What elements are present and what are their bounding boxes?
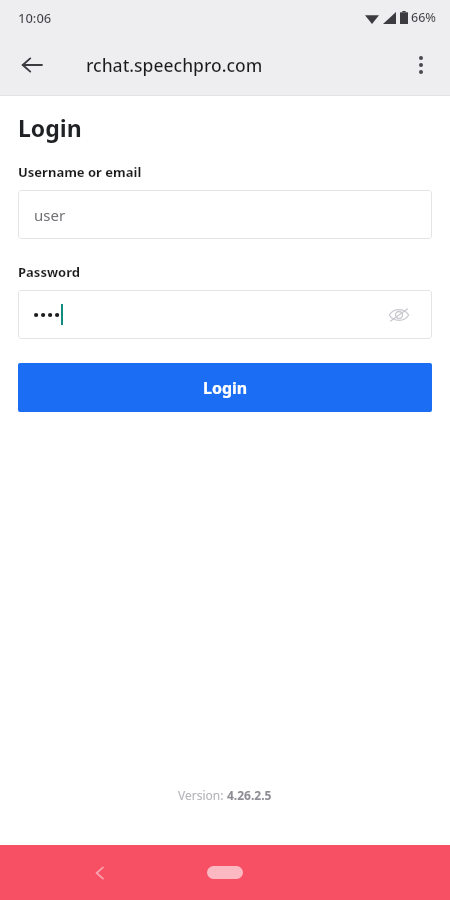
button[interactable]: Back xyxy=(12,45,52,85)
button[interactable]: Show password xyxy=(18,290,432,339)
staticText: Version: xyxy=(178,787,227,803)
button[interactable]: Home xyxy=(207,866,243,879)
staticText: user xyxy=(34,205,66,225)
button[interactable]: Show password xyxy=(384,300,414,330)
staticText: Login xyxy=(203,377,248,399)
button[interactable]: Back xyxy=(78,851,122,895)
staticText: Username or email xyxy=(18,163,142,181)
button[interactable]: Login xyxy=(18,363,432,412)
staticText: rchat.speechpro.com xyxy=(86,53,263,77)
staticText: Password xyxy=(18,263,80,281)
staticText: 66% xyxy=(411,9,436,26)
staticText: Login xyxy=(18,112,82,143)
staticText: 10:06 xyxy=(18,9,52,27)
button[interactable]: More options xyxy=(400,44,442,86)
button[interactable]: user xyxy=(18,190,432,239)
staticText: 4.26.2.5 xyxy=(227,787,272,803)
